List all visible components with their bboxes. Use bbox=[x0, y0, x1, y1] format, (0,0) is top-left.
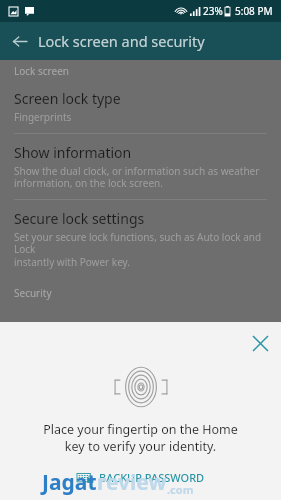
button[interactable]: Back bbox=[0, 22, 38, 60]
button[interactable]: Show information bbox=[0, 134, 281, 199]
staticText: Show the dual clock, or information such… bbox=[14, 164, 260, 190]
staticText: Set your secure lock functions, such as … bbox=[14, 230, 267, 269]
staticText: 23% bbox=[203, 4, 223, 18]
staticText: Screen lock type bbox=[14, 89, 121, 108]
staticText: Lock screen and security bbox=[38, 31, 205, 51]
staticText: .com bbox=[167, 482, 194, 497]
staticText: Secure lock settings bbox=[14, 209, 145, 228]
staticText: Lock screen bbox=[14, 64, 70, 78]
staticText: 5:08 PM bbox=[235, 4, 273, 18]
button[interactable]: BACKUP PASSWORD bbox=[69, 467, 213, 488]
staticText: review bbox=[97, 468, 167, 497]
staticText: Jagat bbox=[42, 468, 97, 497]
staticText: Security bbox=[14, 286, 52, 300]
staticText: Fingerprints bbox=[14, 110, 72, 124]
button[interactable]: Secure lock settings bbox=[0, 200, 281, 278]
staticText: Place your fingertip on the Home key to … bbox=[43, 421, 238, 454]
button[interactable]: Screen lock type bbox=[0, 81, 281, 133]
button[interactable]: Close bbox=[245, 328, 275, 358]
staticText: Show information bbox=[14, 143, 132, 162]
staticText: BACKUP PASSWORD bbox=[99, 470, 205, 485]
